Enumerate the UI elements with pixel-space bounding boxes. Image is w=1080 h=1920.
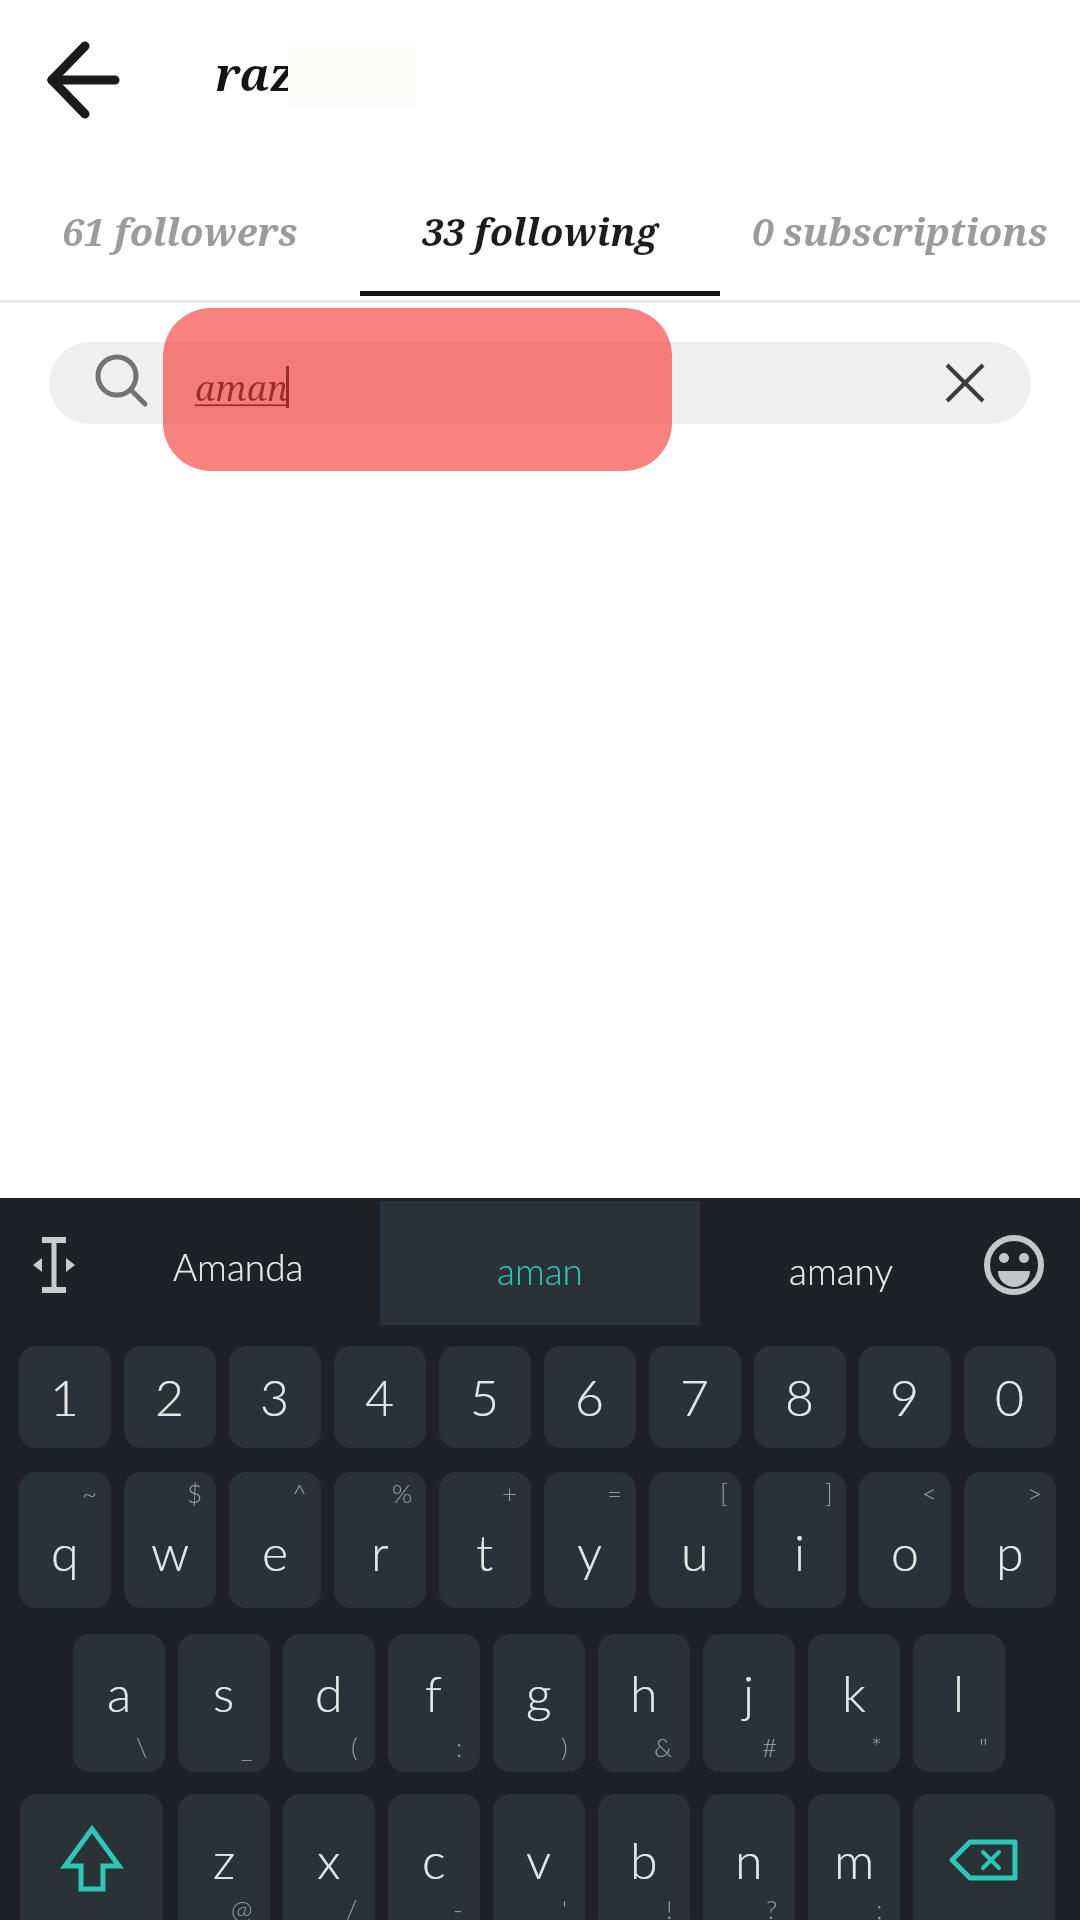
button[interactable]: 33 following — [360, 198, 720, 264]
button[interactable] — [974, 1222, 1054, 1308]
button[interactable]: u — [649, 1472, 741, 1608]
staticText: l — [953, 1663, 965, 1723]
button[interactable]: w — [124, 1472, 216, 1608]
button[interactable]: s — [178, 1634, 270, 1772]
staticText: & — [654, 1731, 673, 1762]
button[interactable]: 0 — [964, 1346, 1056, 1448]
staticText: 8 — [785, 1367, 815, 1427]
button[interactable]: 2 — [124, 1346, 216, 1448]
staticText: r — [371, 1522, 389, 1582]
staticText: d — [315, 1663, 343, 1723]
button[interactable]: x — [283, 1794, 375, 1920]
staticText: v — [526, 1830, 552, 1890]
button[interactable]: m — [808, 1794, 900, 1920]
button[interactable]: r — [334, 1472, 426, 1608]
button[interactable]: t — [439, 1472, 531, 1608]
button[interactable]: f — [388, 1634, 480, 1772]
button[interactable]: q — [19, 1472, 111, 1608]
staticText: 33 following — [422, 205, 658, 257]
staticText: ( — [351, 1731, 358, 1762]
button[interactable]: i — [754, 1472, 846, 1608]
staticText: t — [476, 1522, 494, 1582]
button[interactable]: 5 — [439, 1346, 531, 1448]
staticText: " — [979, 1731, 988, 1762]
button[interactable]: 3 — [229, 1346, 321, 1448]
staticText: 61 followers — [62, 205, 298, 257]
button[interactable]: p — [964, 1472, 1056, 1608]
button[interactable]: 7 — [649, 1346, 741, 1448]
staticText: 9 — [890, 1367, 920, 1427]
button[interactable]: e — [229, 1472, 321, 1608]
button[interactable]: 0 subscriptions — [720, 198, 1080, 264]
button[interactable]: a — [73, 1634, 165, 1772]
staticText: ) — [561, 1731, 568, 1762]
staticText: h — [630, 1663, 658, 1723]
staticText: ! — [666, 1893, 673, 1920]
staticText: [ — [720, 1477, 728, 1508]
staticText: ] — [825, 1477, 833, 1508]
staticText: ^ — [292, 1477, 308, 1508]
staticText: / — [346, 1893, 358, 1920]
staticText: = — [607, 1477, 623, 1508]
button[interactable]: o — [859, 1472, 951, 1608]
staticText: \ — [136, 1731, 148, 1762]
button[interactable]: 9 — [859, 1346, 951, 1448]
button[interactable]: l — [913, 1634, 1005, 1772]
staticText: e — [262, 1522, 289, 1582]
button[interactable] — [913, 1794, 1055, 1920]
button[interactable]: d — [283, 1634, 375, 1772]
button[interactable]: 8 — [754, 1346, 846, 1448]
staticText: Amanda — [173, 1244, 304, 1288]
button[interactable]: c — [388, 1794, 480, 1920]
button[interactable] — [928, 346, 1002, 420]
staticText: : — [456, 1731, 463, 1762]
staticText: w — [151, 1522, 190, 1582]
staticText: k — [842, 1663, 866, 1723]
button[interactable] — [20, 1794, 163, 1920]
button[interactable]: 1 — [19, 1346, 111, 1448]
staticText: u — [681, 1522, 709, 1582]
button[interactable] — [14, 1222, 94, 1308]
staticText: _ — [241, 1731, 253, 1762]
staticText: c — [422, 1830, 446, 1890]
staticText: % — [392, 1477, 413, 1508]
staticText: * — [871, 1731, 883, 1762]
button[interactable]: b — [598, 1794, 690, 1920]
staticText: # — [762, 1731, 778, 1762]
staticText: 1 — [50, 1367, 80, 1427]
staticText: x — [317, 1830, 341, 1890]
staticText: $ — [187, 1477, 203, 1508]
staticText: 6 — [575, 1367, 605, 1427]
staticText: o — [891, 1522, 919, 1582]
button[interactable] — [380, 1201, 700, 1325]
staticText: aman — [195, 364, 288, 412]
staticText: ' — [562, 1893, 568, 1920]
staticText: aman — [497, 1248, 583, 1292]
button[interactable]: v — [493, 1794, 585, 1920]
button[interactable]: j — [703, 1634, 795, 1772]
button[interactable] — [36, 40, 132, 120]
staticText: 3 — [260, 1367, 290, 1427]
button[interactable]: h — [598, 1634, 690, 1772]
staticText: raz — [215, 42, 296, 105]
button[interactable]: n — [703, 1794, 795, 1920]
button[interactable]: 4 — [334, 1346, 426, 1448]
button[interactable] — [49, 342, 1031, 424]
staticText: s — [213, 1663, 235, 1723]
staticText: > — [1027, 1477, 1043, 1508]
staticText: j — [743, 1663, 755, 1723]
staticText: f — [425, 1663, 443, 1723]
staticText: z — [213, 1830, 236, 1890]
staticText: n — [735, 1830, 763, 1890]
staticText: b — [630, 1830, 658, 1890]
button[interactable]: 61 followers — [0, 198, 360, 264]
button[interactable]: k — [808, 1634, 900, 1772]
staticText: amany — [789, 1248, 894, 1292]
button[interactable]: 6 — [544, 1346, 636, 1448]
staticText: @ — [231, 1893, 253, 1920]
staticText: g — [526, 1663, 552, 1723]
button[interactable]: z — [178, 1794, 270, 1920]
button[interactable]: g — [493, 1634, 585, 1772]
staticText: < — [922, 1477, 938, 1508]
button[interactable]: y — [544, 1472, 636, 1608]
